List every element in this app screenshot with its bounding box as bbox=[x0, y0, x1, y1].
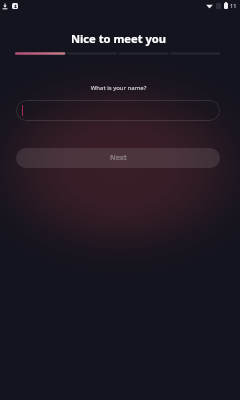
button[interactable] bbox=[16, 100, 220, 121]
staticText: 11 bbox=[230, 2, 237, 9]
staticText: Nice to meet you bbox=[0, 31, 237, 46]
staticText: Next bbox=[110, 153, 127, 163]
staticText: What is your name? bbox=[0, 84, 237, 92]
button[interactable]: Next bbox=[16, 148, 220, 168]
